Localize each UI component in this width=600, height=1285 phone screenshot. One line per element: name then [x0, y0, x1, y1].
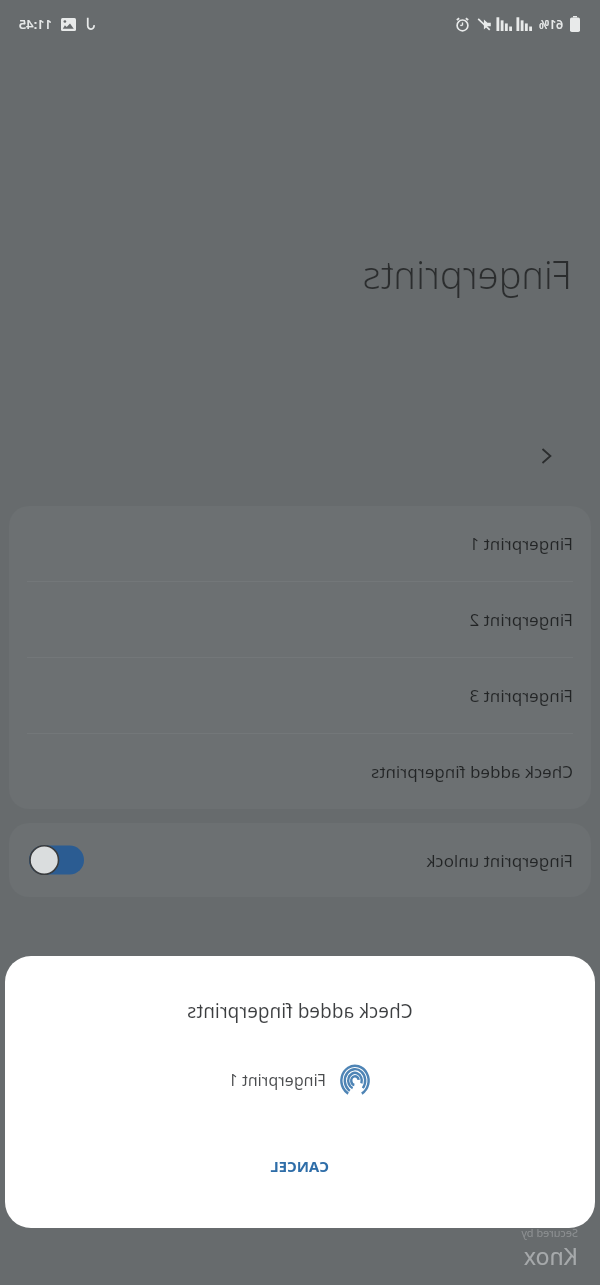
button[interactable]: CANCEL [248, 1149, 351, 1183]
staticText: Knox [523, 1240, 578, 1271]
staticText: 61% [539, 16, 563, 32]
button[interactable]: Fingerprint 1 [9, 506, 591, 581]
staticText: Check added fingerprints [187, 998, 413, 1024]
button[interactable]: Fingerprint 2 [9, 582, 591, 657]
staticText: Secured by [521, 1225, 578, 1240]
staticText: Fingerprint 1 [469, 532, 573, 555]
button[interactable]: Check added fingerprints [9, 734, 591, 809]
staticText: Fingerprint 1 [228, 1069, 326, 1091]
button[interactable]: Fingerprint 3 [9, 658, 591, 733]
button[interactable]: Back [522, 432, 570, 480]
staticText: CANCEL [270, 1156, 329, 1176]
staticText: Fingerprint 2 [469, 608, 573, 631]
staticText: 11:45 [18, 15, 52, 33]
staticText: Check added fingerprints [371, 760, 573, 783]
staticText: Fingerprints [362, 248, 572, 300]
button[interactable]: Fingerprint unlock [9, 823, 591, 897]
staticText: Fingerprint unlock [426, 849, 573, 872]
staticText: Fingerprint 3 [469, 684, 573, 707]
